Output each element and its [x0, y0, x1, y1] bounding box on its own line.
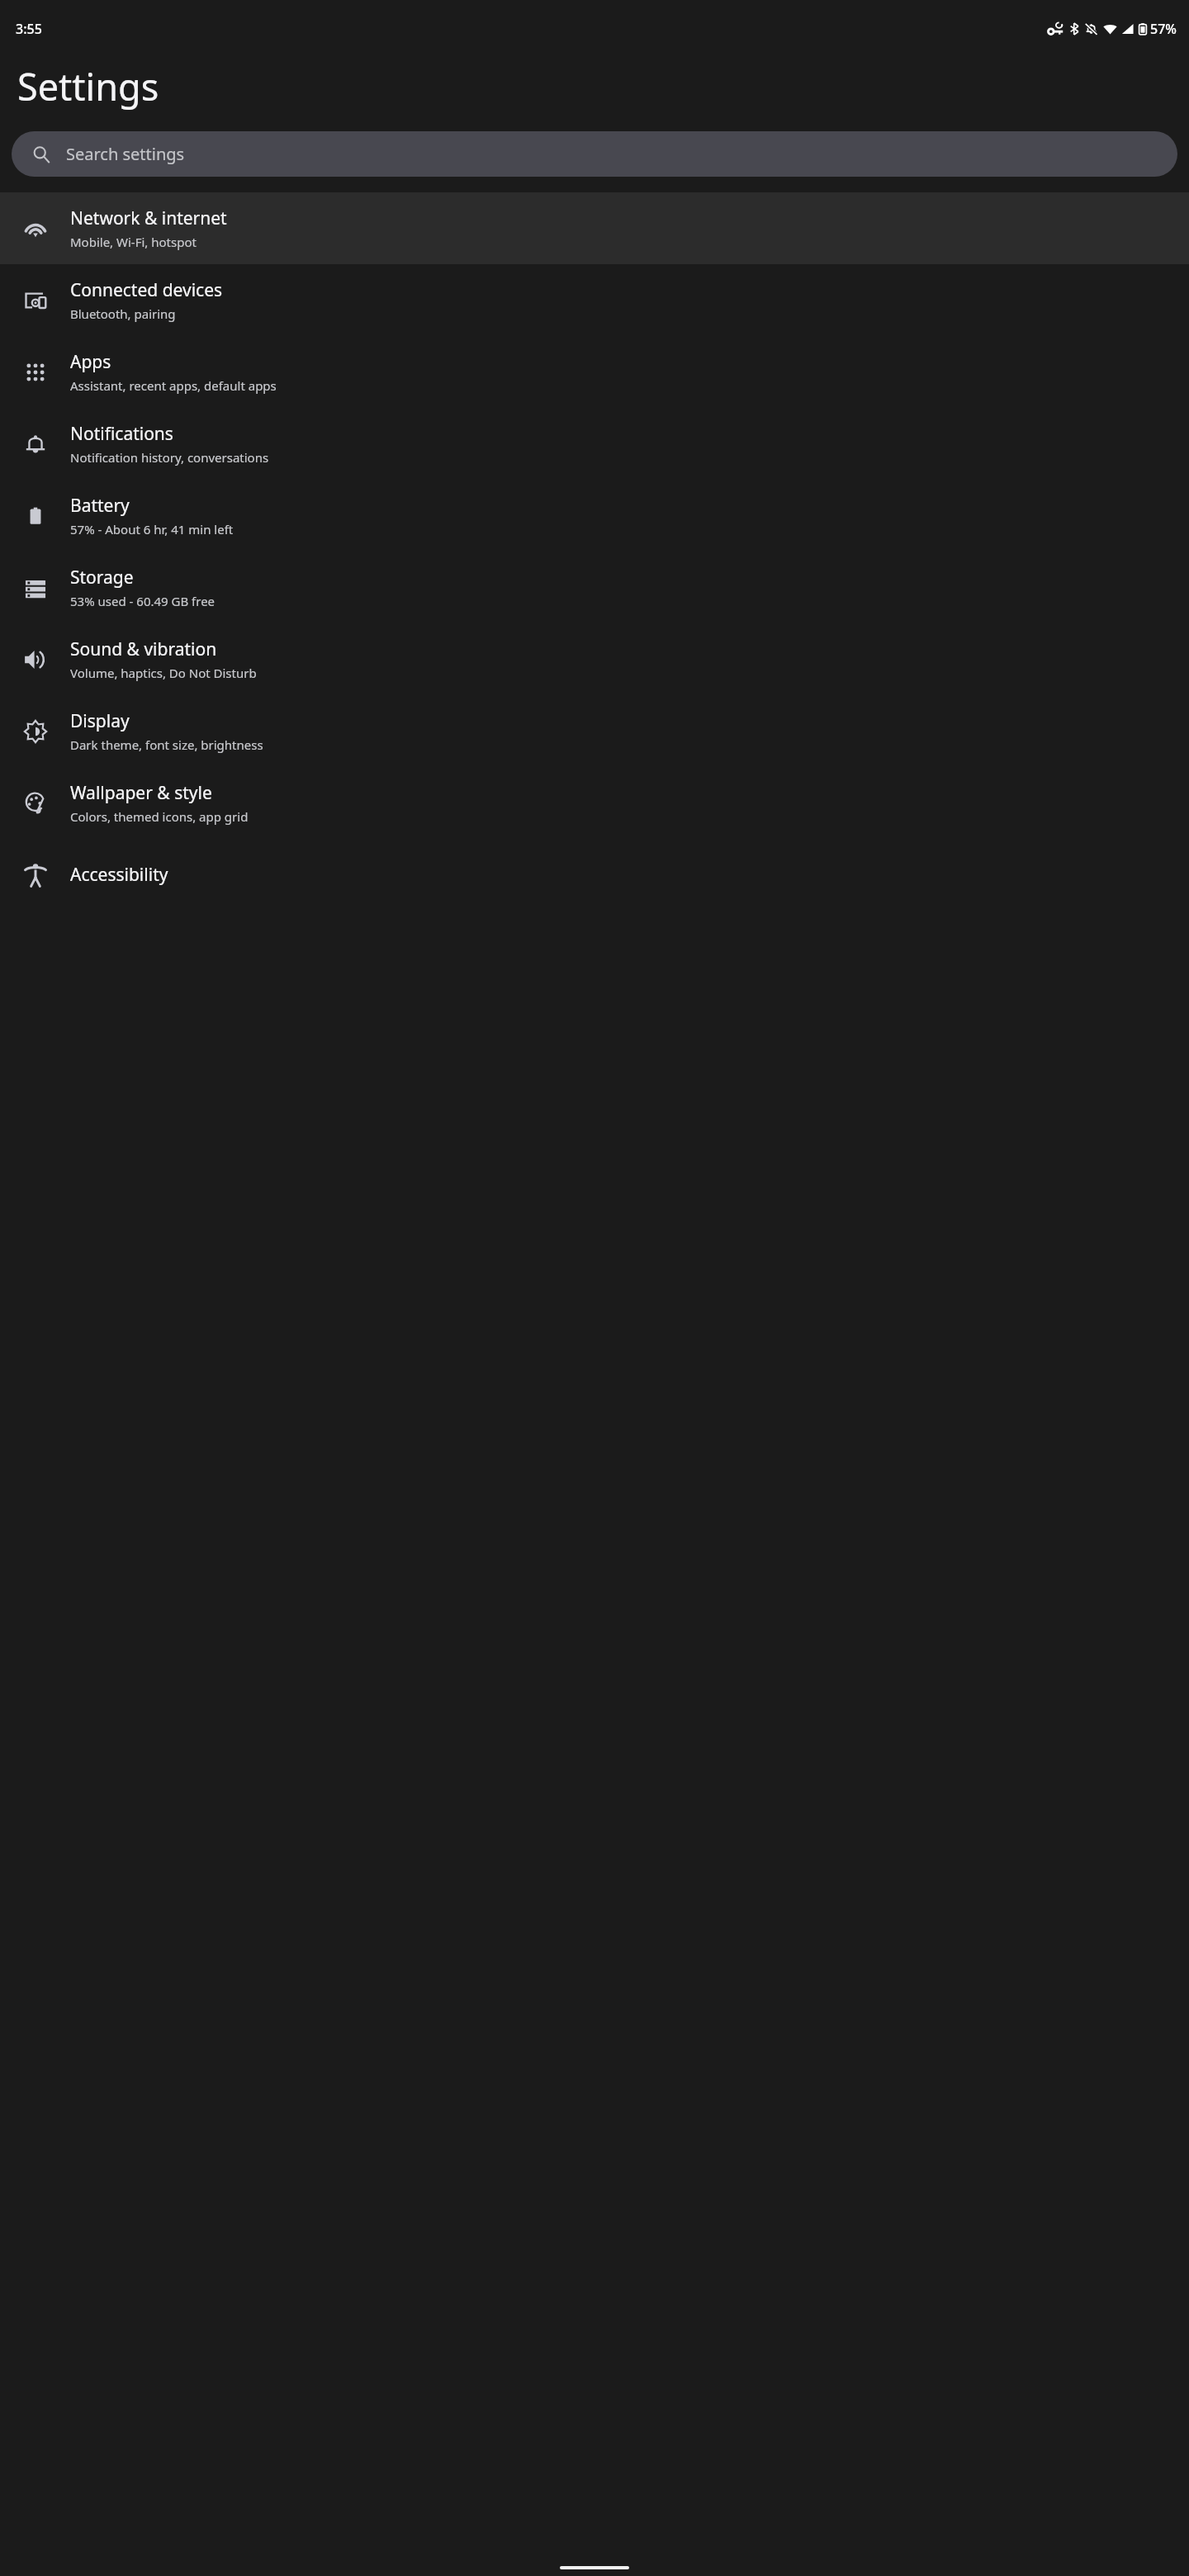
- staticText: Assistant, recent apps, default apps: [70, 377, 277, 394]
- staticText: Apps: [70, 350, 111, 374]
- button[interactable]: Notifications: [0, 408, 1189, 480]
- staticText: Notification history, conversations: [70, 449, 269, 466]
- button[interactable]: Sound & vibration: [0, 623, 1189, 695]
- button[interactable]: Storage: [0, 552, 1189, 623]
- staticText: Search settings: [66, 143, 185, 165]
- other: Search: [32, 145, 50, 163]
- button[interactable]: Connected devices: [0, 264, 1189, 336]
- staticText: Battery: [70, 494, 130, 518]
- staticText: Sound & vibration: [70, 637, 217, 661]
- staticText: Network & internet: [70, 206, 227, 230]
- staticText: Notifications: [70, 422, 173, 446]
- button[interactable]: Accessibility: [0, 839, 1189, 911]
- staticText: Bluetooth, pairing: [70, 305, 176, 322]
- button[interactable]: Network & internet: [0, 192, 1189, 264]
- staticText: Display: [70, 709, 130, 733]
- button[interactable]: Search: [12, 131, 1177, 177]
- button[interactable]: Display: [0, 695, 1189, 767]
- staticText: Settings: [17, 61, 159, 111]
- staticText: Dark theme, font size, brightness: [70, 736, 263, 753]
- button[interactable]: Battery: [0, 480, 1189, 552]
- staticText: 57%: [1150, 20, 1177, 38]
- button[interactable]: Apps: [0, 336, 1189, 408]
- staticText: Storage: [70, 566, 134, 590]
- staticText: 57% - About 6 hr, 41 min left: [70, 521, 234, 537]
- staticText: Volume, haptics, Do Not Disturb: [70, 665, 257, 681]
- staticText: Accessibility: [70, 863, 168, 887]
- staticText: 53% used - 60.49 GB free: [70, 593, 216, 609]
- staticText: 3:55: [16, 20, 42, 38]
- staticText: Wallpaper & style: [70, 781, 212, 805]
- button[interactable]: Wallpaper & style: [0, 767, 1189, 839]
- staticText: Colors, themed icons, app grid: [70, 808, 249, 825]
- staticText: Mobile, Wi-Fi, hotspot: [70, 234, 197, 250]
- staticText: Connected devices: [70, 278, 223, 302]
